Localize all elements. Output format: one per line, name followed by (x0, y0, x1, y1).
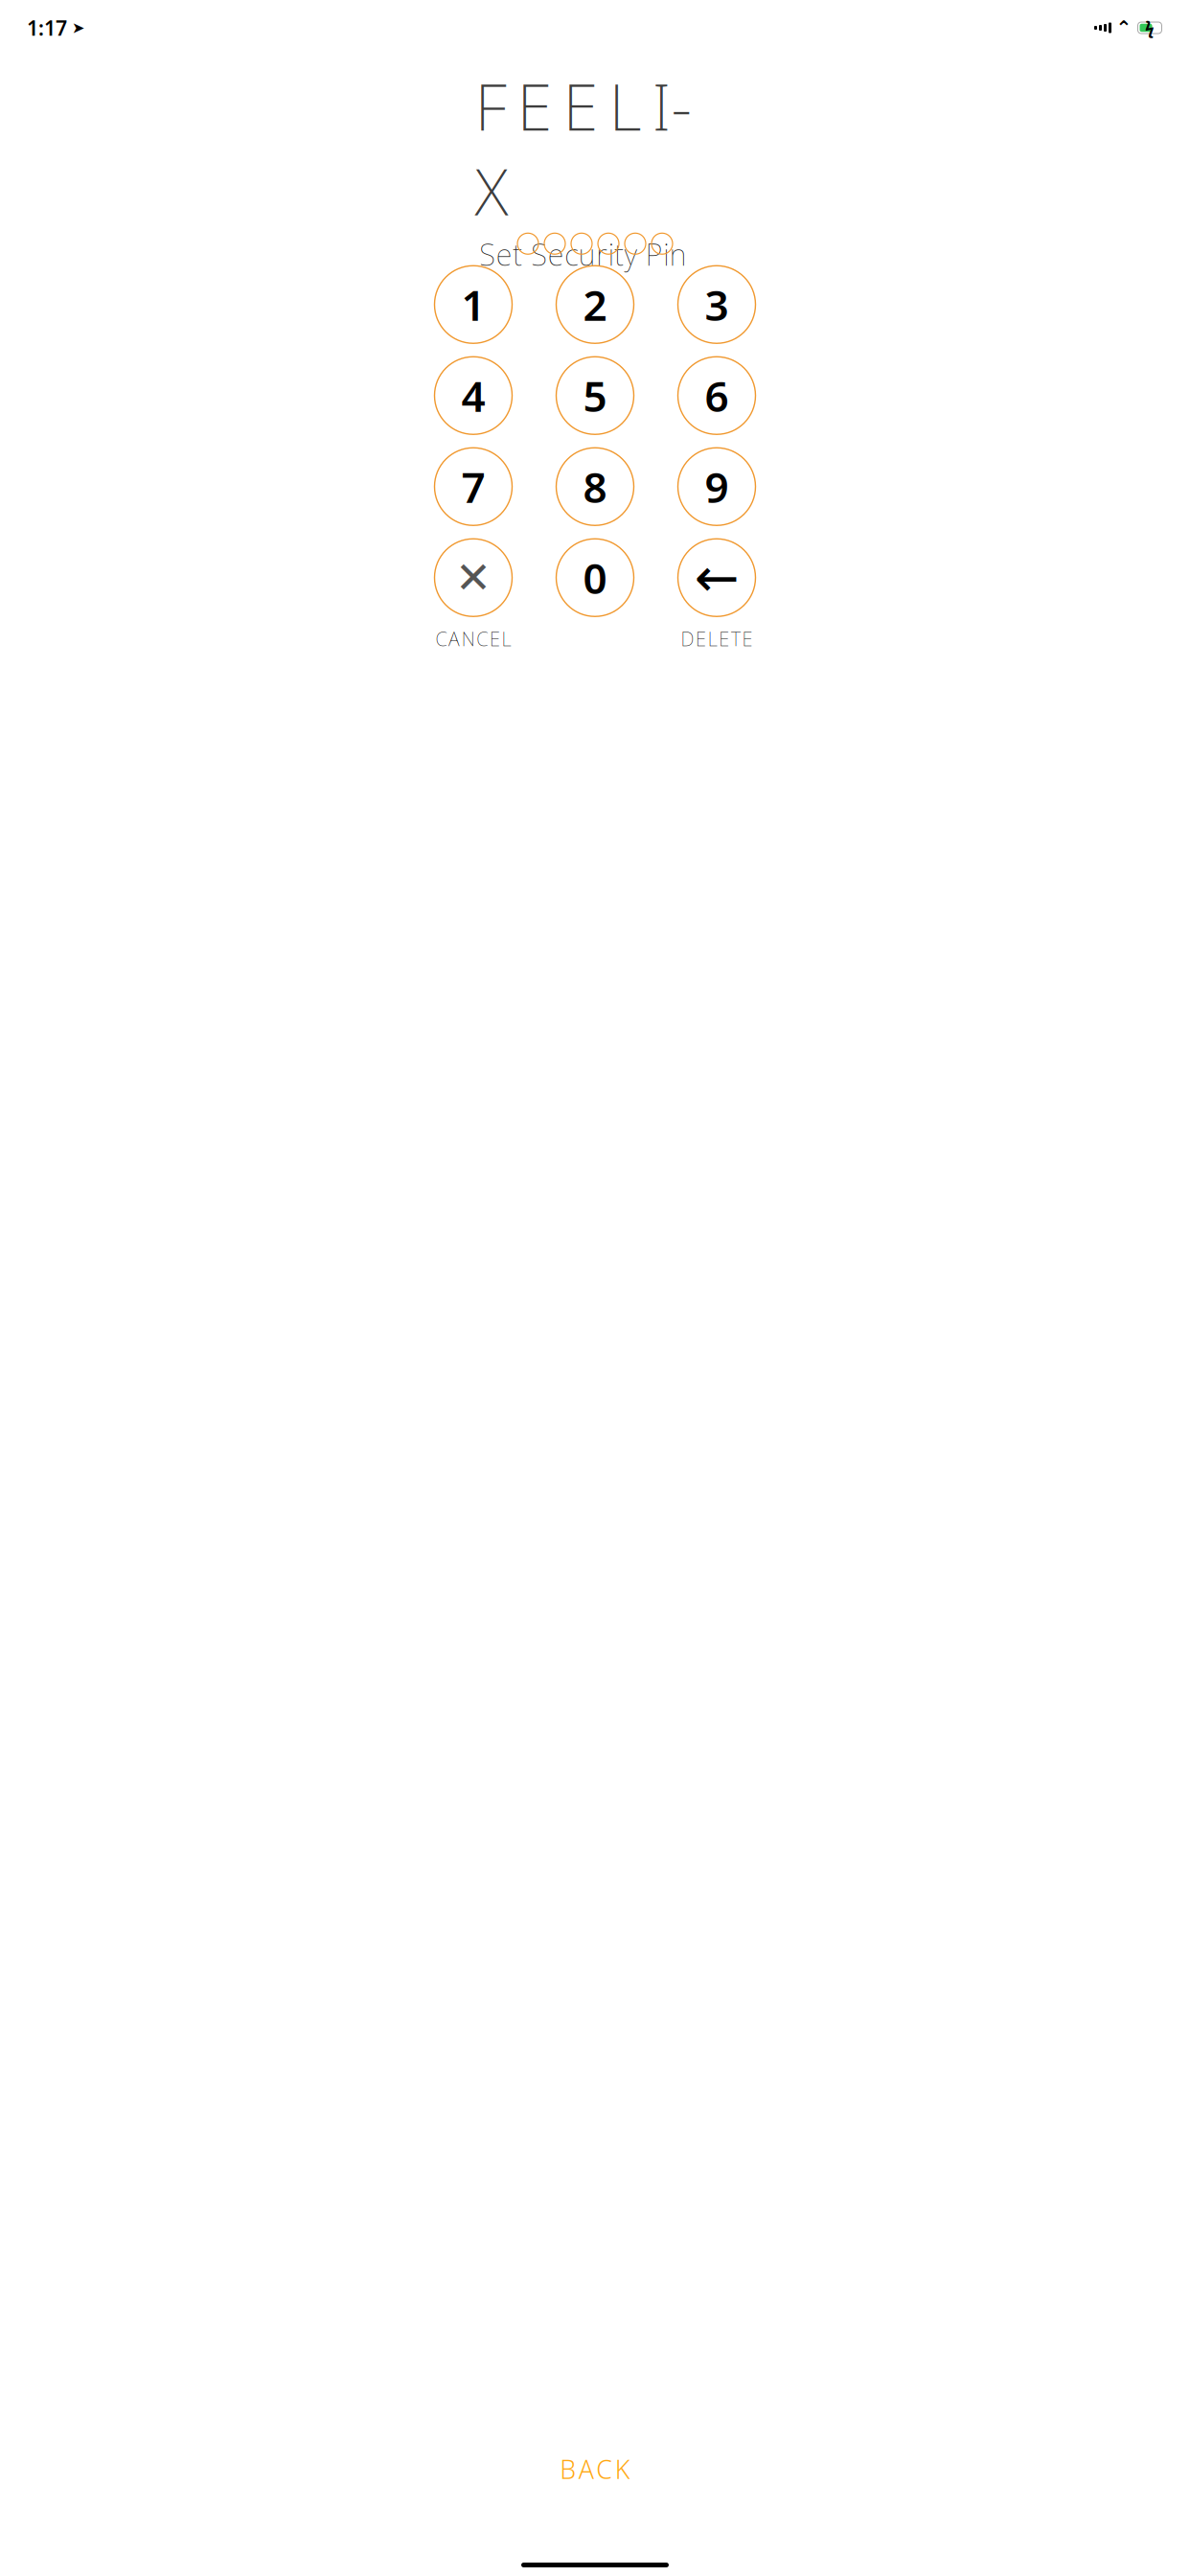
staticText: 7 (461, 459, 485, 515)
staticText: ➤ (72, 19, 84, 37)
staticText: 6 (705, 368, 729, 423)
staticText: FEELIX (475, 63, 691, 233)
staticText: BACK (560, 2452, 630, 2486)
staticText: 4 (461, 368, 485, 423)
button[interactable]: BACK (0, 2442, 1190, 2495)
staticText: 3 (705, 276, 729, 332)
staticText: DELETE (681, 626, 753, 652)
staticText: Set Security Pin (479, 235, 687, 274)
button[interactable]: 5 (556, 357, 634, 434)
staticText: 8 (583, 459, 607, 515)
button[interactable]: 2 (556, 266, 634, 343)
staticText: 1:17 (27, 14, 67, 41)
staticText: 1 (461, 276, 485, 332)
button[interactable]: Cancel (435, 539, 512, 616)
staticText: 2 (583, 276, 607, 332)
staticText: ⌃ (1116, 17, 1132, 39)
button[interactable]: 9 (678, 448, 755, 525)
staticText: ← (694, 547, 739, 608)
button[interactable]: 4 (435, 357, 512, 434)
staticText: 9 (705, 459, 729, 515)
staticText: CANCEL (435, 626, 511, 652)
staticText: 0 (583, 550, 607, 606)
staticText: ϟ (1145, 17, 1155, 39)
staticText: 5 (583, 368, 607, 423)
button[interactable]: 8 (556, 448, 634, 525)
button[interactable]: 1 (435, 266, 512, 343)
button[interactable]: 0 (556, 539, 634, 616)
button[interactable]: 3 (678, 266, 755, 343)
button[interactable]: 7 (435, 448, 512, 525)
button[interactable]: 6 (678, 357, 755, 434)
staticText: ✕ (455, 553, 492, 602)
button[interactable]: Delete (678, 539, 755, 616)
